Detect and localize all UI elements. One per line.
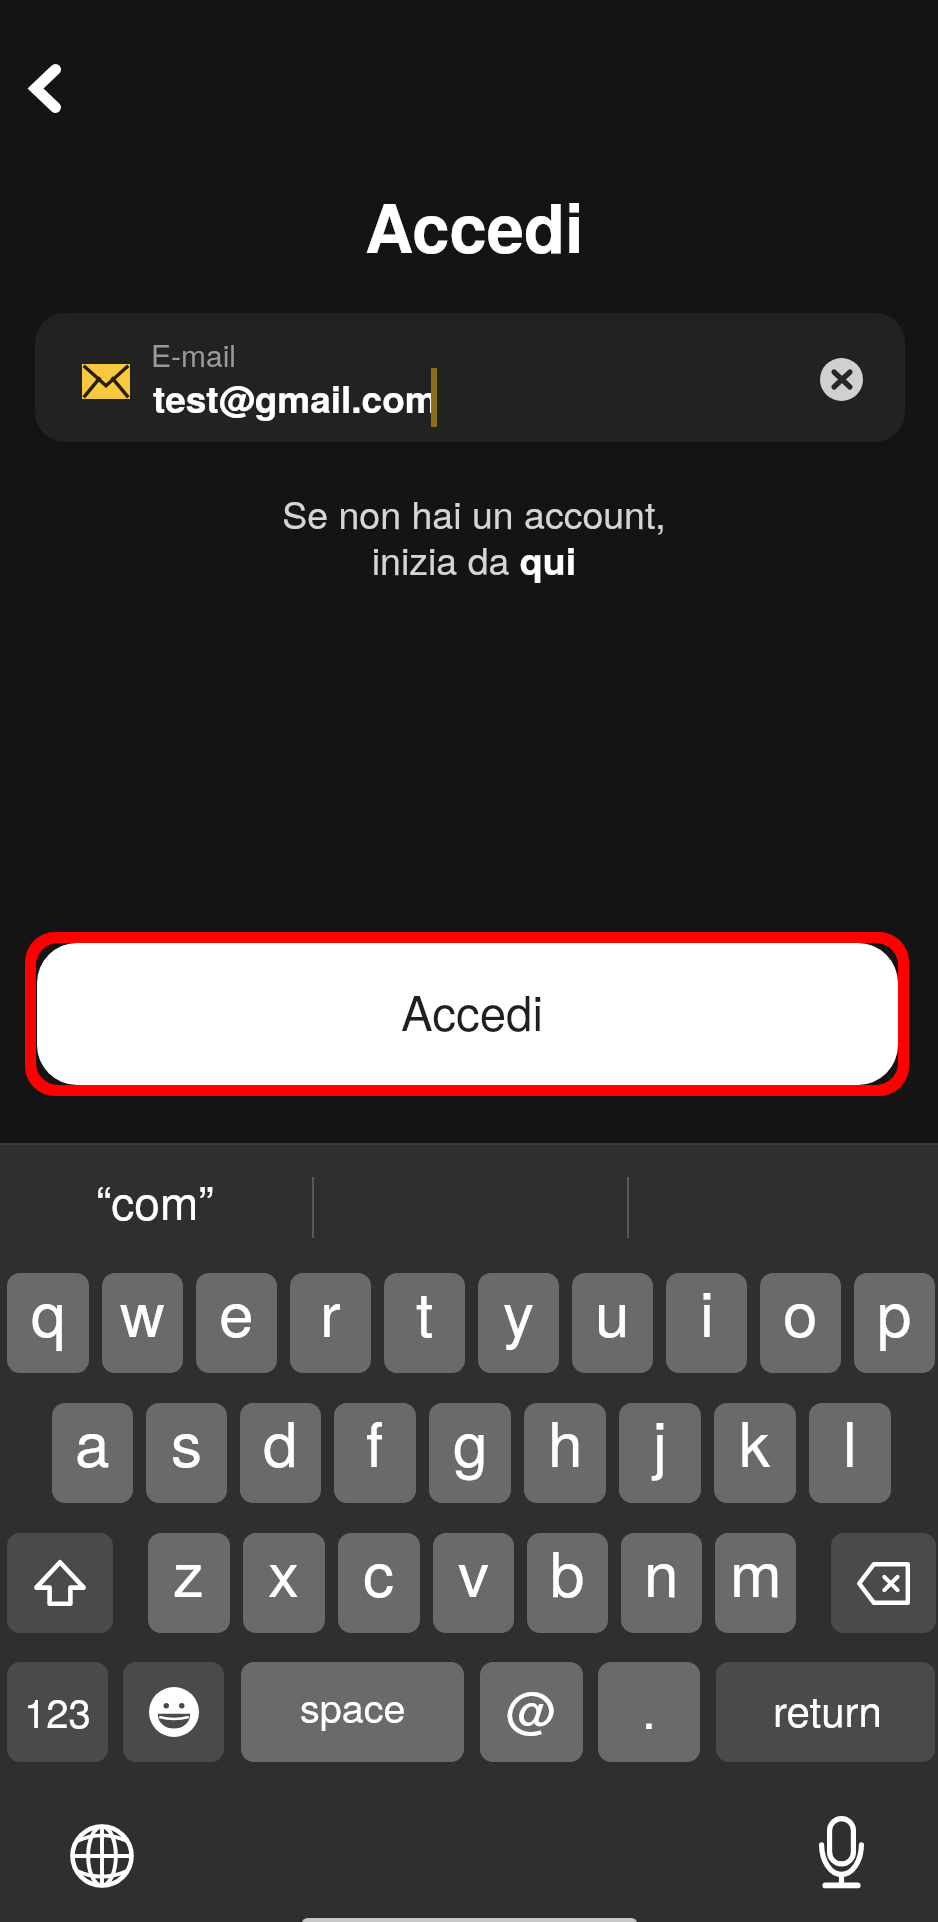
staticText: 123 xyxy=(24,1682,91,1739)
button[interactable]: Backspace xyxy=(831,1533,936,1633)
button[interactable]: return xyxy=(716,1662,935,1762)
staticText: c xyxy=(363,1533,395,1615)
button[interactable]: Accedi xyxy=(36,943,898,1085)
button[interactable]: p xyxy=(854,1273,935,1373)
staticText: @ xyxy=(506,1672,557,1744)
staticText: Accedi xyxy=(401,976,544,1044)
button[interactable]: f xyxy=(334,1403,416,1503)
button[interactable]: n xyxy=(621,1533,702,1633)
button[interactable]: u xyxy=(572,1273,653,1373)
staticText: return xyxy=(773,1679,882,1739)
button[interactable]: k xyxy=(714,1403,796,1503)
staticText: Accedi xyxy=(365,178,584,274)
button[interactable]: Shift xyxy=(7,1533,113,1633)
staticText: test@gmail.com xyxy=(153,371,438,424)
staticText: k xyxy=(739,1403,771,1485)
button[interactable]: m xyxy=(715,1533,796,1633)
staticText: t xyxy=(416,1273,434,1355)
staticText: “com” xyxy=(96,1167,214,1233)
button[interactable]: t xyxy=(384,1273,465,1373)
staticText: . xyxy=(642,1672,656,1744)
button[interactable]: Back xyxy=(3,46,87,130)
staticText: n xyxy=(644,1533,679,1615)
staticText: r xyxy=(320,1273,341,1355)
staticText: o xyxy=(783,1273,818,1355)
staticText: s xyxy=(171,1403,203,1485)
staticText: z xyxy=(173,1533,205,1615)
staticText: a xyxy=(75,1403,110,1485)
staticText: g xyxy=(453,1403,488,1485)
staticText: m xyxy=(730,1533,782,1615)
staticText: v xyxy=(458,1533,490,1615)
button[interactable]: l xyxy=(809,1403,891,1503)
button[interactable]: h xyxy=(524,1403,606,1503)
button[interactable]: . xyxy=(598,1662,700,1762)
staticText: i xyxy=(700,1273,714,1355)
staticText: f xyxy=(366,1403,384,1485)
staticText: e xyxy=(219,1273,254,1355)
staticText: E-mail xyxy=(151,333,236,376)
button[interactable]: Clear text xyxy=(820,358,863,401)
staticText: h xyxy=(548,1403,583,1485)
button[interactable]: v xyxy=(433,1533,514,1633)
staticText: Se non hai un account, inizia da qui xyxy=(282,486,666,586)
staticText: p xyxy=(877,1273,912,1355)
button[interactable]: r xyxy=(290,1273,371,1373)
button[interactable]: b xyxy=(527,1533,608,1633)
button[interactable]: @ xyxy=(480,1662,583,1762)
button[interactable]: E-mail xyxy=(35,313,905,442)
button[interactable]: d xyxy=(240,1403,321,1503)
button[interactable]: space xyxy=(241,1662,464,1762)
button[interactable]: e xyxy=(196,1273,277,1373)
button[interactable]: Dictation xyxy=(805,1816,877,1888)
button[interactable]: Emoji xyxy=(123,1662,224,1762)
button[interactable]: i xyxy=(666,1273,747,1373)
button[interactable]: a xyxy=(52,1403,133,1503)
staticText: x xyxy=(268,1533,300,1615)
staticText: l xyxy=(843,1403,857,1485)
staticText: q xyxy=(31,1273,66,1355)
button[interactable]: j xyxy=(619,1403,701,1503)
button[interactable]: o xyxy=(760,1273,841,1373)
button[interactable]: 123 xyxy=(7,1662,108,1762)
staticText: d xyxy=(263,1403,298,1485)
button[interactable]: Change keyboard language xyxy=(66,1820,138,1892)
staticText: b xyxy=(550,1533,585,1615)
staticText: w xyxy=(120,1273,165,1355)
staticText: u xyxy=(595,1273,630,1355)
staticText: y xyxy=(503,1273,535,1355)
staticText: space xyxy=(300,1678,406,1735)
button[interactable]: w xyxy=(102,1273,183,1373)
staticText: j xyxy=(653,1403,667,1485)
button[interactable]: x xyxy=(243,1533,325,1633)
button[interactable]: q xyxy=(7,1273,89,1373)
button[interactable]: y xyxy=(478,1273,559,1373)
button[interactable]: g xyxy=(429,1403,511,1503)
button[interactable]: s xyxy=(146,1403,227,1503)
button[interactable]: c xyxy=(338,1533,420,1633)
button[interactable]: z xyxy=(148,1533,230,1633)
